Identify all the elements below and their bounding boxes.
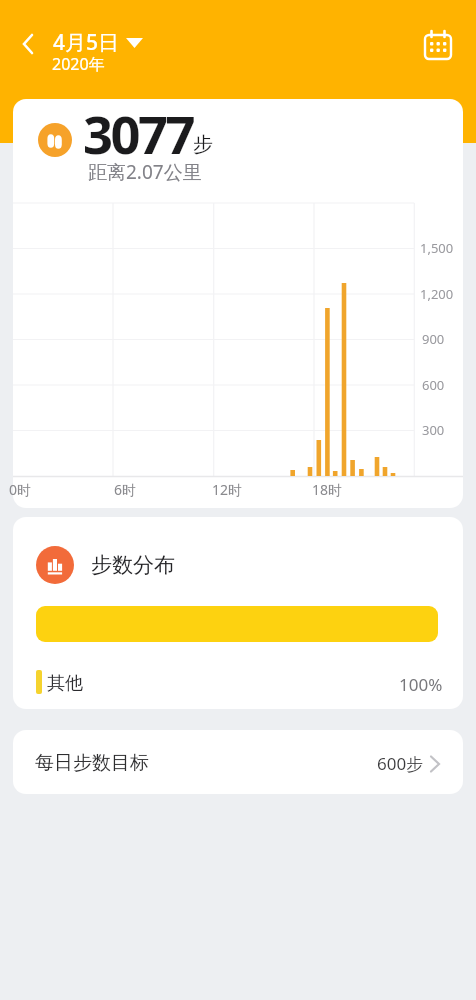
button[interactable] (13, 730, 463, 794)
staticText: 每日步数目标 (35, 751, 149, 775)
staticText: 6时 (114, 480, 137, 499)
button[interactable]: 4月5日 (0, 12, 176, 72)
staticText: 距离2.07公里 (88, 159, 202, 185)
staticText: 18时 (312, 480, 343, 499)
staticText: 600 (422, 376, 445, 394)
staticText: 12时 (212, 480, 243, 499)
staticText: 步 (193, 132, 213, 157)
staticText: 1,500 (420, 239, 454, 257)
staticText: 2020年 (52, 53, 105, 75)
staticText: 900 (422, 330, 445, 348)
staticText: 1,200 (420, 285, 454, 303)
staticText: 步数分布 (91, 552, 175, 578)
staticText: 其他 (47, 672, 83, 695)
staticText: 0时 (9, 480, 32, 499)
button[interactable] (418, 25, 458, 65)
button[interactable] (15, 28, 43, 60)
staticText: 100% (399, 673, 443, 696)
staticText: 600步 (377, 752, 424, 775)
staticText: 3077 (83, 98, 194, 158)
staticText: 300 (422, 421, 445, 439)
staticText: 4月5日 (53, 28, 120, 57)
